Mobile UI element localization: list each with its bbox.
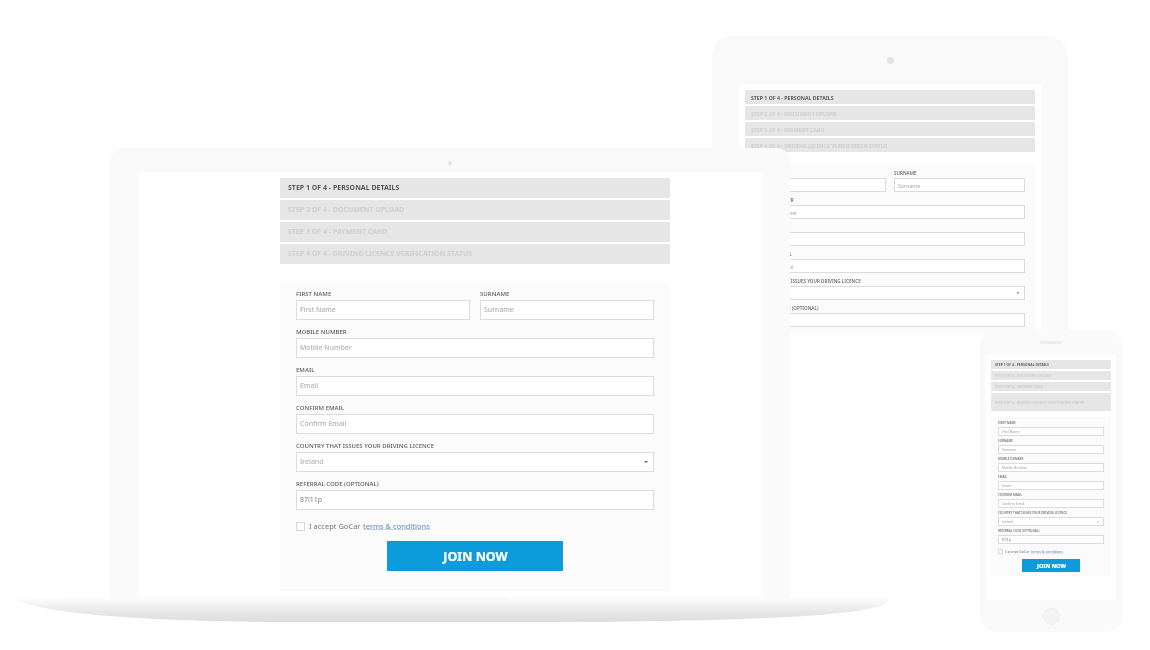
button[interactable]: Mobile Number	[296, 338, 654, 358]
staticText: Mobile Number	[300, 343, 352, 353]
staticText: STEP 2 OF 4 - DOCUMENT UPLOAD	[995, 373, 1052, 378]
button[interactable]: STEP 1 OF 4 - PERSONAL DETAILS	[991, 360, 1111, 369]
staticText: FIRST NAME	[296, 290, 332, 298]
button[interactable]: STEP 2 OF 4 - DOCUMENT UPLOAD	[280, 200, 670, 220]
button[interactable]: Mobile Number	[755, 205, 1025, 219]
staticText: 87i1p	[1002, 537, 1011, 542]
button[interactable]: STEP 1 OF 4 - PERSONAL DETAILS	[745, 90, 1035, 104]
staticText: CONFIRM EMAIL	[998, 493, 1023, 497]
button[interactable]: STEP 3 OF 4 - PAYMENT CARD	[745, 122, 1035, 136]
button[interactable]: STEP 4 OF 4 - DRIVING LICENCE VERIFICATI…	[991, 393, 1111, 411]
button[interactable]: Confirm Email	[755, 259, 1025, 273]
button[interactable]: Email	[998, 481, 1104, 490]
staticText: I accept GoCar	[309, 521, 363, 531]
button[interactable]: First Name	[296, 300, 470, 320]
button[interactable]: Ireland	[998, 517, 1104, 526]
staticText: Surname	[484, 305, 514, 315]
staticText: Email	[1002, 483, 1011, 488]
staticText: STEP 3 OF 4 - PAYMENT CARD	[751, 126, 825, 133]
staticText: MOBILE NUMBER	[755, 197, 794, 203]
staticText: Mobile Number	[759, 209, 798, 216]
button[interactable]: 87i1p	[998, 535, 1104, 544]
staticText: JOIN NOW	[1037, 562, 1066, 570]
staticText: First Name	[1002, 429, 1020, 434]
staticText: Mobile Number	[1002, 465, 1027, 470]
button[interactable]: JOIN NOW	[387, 541, 563, 571]
button[interactable]: I accept GoCar	[296, 521, 654, 531]
button[interactable]: Confirm Email	[998, 499, 1104, 508]
staticText: Surname	[1002, 447, 1017, 452]
staticText: STEP 4 OF 4 - DRIVING LICENCE VERIFICATI…	[751, 142, 888, 149]
staticText: JOIN NOW	[443, 548, 508, 565]
button[interactable]: Surname	[894, 178, 1025, 192]
button[interactable]: 87i11p	[755, 313, 1025, 327]
staticText: STEP 1 OF 4 - PERSONAL DETAILS	[288, 183, 400, 193]
staticText: First Name	[300, 305, 336, 315]
staticText: SURNAME	[894, 170, 917, 176]
button[interactable]: terms & conditions	[1031, 549, 1063, 554]
staticText: STEP 4 OF 4 - DRIVING LICENCE VERIFICATI…	[288, 249, 473, 259]
staticText: EMAIL	[296, 366, 315, 374]
staticText: STEP 3 OF 4 - PAYMENT CARD	[288, 227, 387, 237]
button[interactable]: First Name	[755, 178, 886, 192]
staticText: Confirm Email	[759, 263, 794, 270]
button[interactable]: STEP 3 OF 4 - PAYMENT CARD	[280, 222, 670, 242]
staticText: SURNAME	[998, 439, 1013, 443]
staticText: Ireland	[300, 457, 324, 467]
staticText: STEP 2 OF 4 - DOCUMENT UPLOAD	[288, 205, 405, 215]
staticText: COUNTRY THAT ISSUES YOUR DRIVING LICENCE	[998, 511, 1068, 515]
staticText: REFERRAL CODE (OPTIONAL)	[296, 480, 379, 488]
button[interactable]: Email	[296, 376, 654, 396]
staticText: Surname	[898, 182, 921, 189]
staticText: Confirm Email	[1002, 501, 1025, 506]
button[interactable]: Surname	[998, 445, 1104, 454]
staticText: 87i11p	[300, 495, 323, 505]
button[interactable]: Surname	[480, 300, 654, 320]
staticText: STEP 1 OF 4 - PERSONAL DETAILS	[995, 362, 1049, 367]
staticText: FIRST NAME	[998, 421, 1016, 425]
button[interactable]: STEP 2 OF 4 - DOCUMENT UPLOAD	[991, 371, 1111, 380]
staticText: MOBILE NUMBER	[296, 328, 347, 336]
staticText: CONFIRM EMAIL	[296, 404, 345, 412]
staticText: STEP 2 OF 4 - DOCUMENT UPLOAD	[751, 110, 838, 117]
button[interactable]: I accept GoCar	[998, 549, 1104, 554]
button[interactable]: Email	[755, 232, 1025, 246]
button[interactable]: STEP 3 OF 4 - PAYMENT CARD	[991, 382, 1111, 391]
button[interactable]: Mobile Number	[998, 463, 1104, 472]
staticText: Email	[300, 381, 318, 391]
button[interactable]: STEP 2 OF 4 - DOCUMENT UPLOAD	[745, 106, 1035, 120]
button[interactable]: STEP 4 OF 4 - DRIVING LICENCE VERIFICATI…	[280, 244, 670, 264]
staticText: REFERRAL CODE (OPTIONAL)	[755, 305, 819, 311]
button[interactable]: First Name	[998, 427, 1104, 436]
button[interactable]: STEP 4 OF 4 - DRIVING LICENCE VERIFICATI…	[745, 138, 1035, 152]
staticText: Confirm Email	[300, 419, 347, 429]
staticText: STEP 3 OF 4 - PAYMENT CARD	[995, 384, 1043, 389]
staticText: SURNAME	[480, 290, 510, 298]
staticText: MOBILE NUMBER	[998, 457, 1024, 461]
button[interactable]: STEP 1 OF 4 - PERSONAL DETAILS	[280, 178, 670, 198]
staticText: CONFIRM EMAIL	[755, 251, 792, 257]
staticText: STEP 1 OF 4 - PERSONAL DETAILS	[751, 94, 834, 101]
staticText: Ireland	[1002, 519, 1014, 524]
button[interactable]: JOIN NOW	[1022, 559, 1080, 572]
button[interactable]: Confirm Email	[296, 414, 654, 434]
button[interactable]: terms & conditions	[363, 521, 430, 531]
button[interactable]: Ireland	[755, 286, 1025, 300]
staticText: COUNTRY THAT ISSUES YOUR DRIVING LICENCE	[755, 278, 861, 284]
staticText: STEP 4 OF 4 - DRIVING LICENCE VERIFICATI…	[995, 400, 1085, 405]
button[interactable]: Ireland	[296, 452, 654, 472]
staticText: EMAIL	[998, 475, 1008, 479]
staticText: I accept GoCar	[1005, 549, 1031, 554]
staticText: COUNTRY THAT ISSUES YOUR DRIVING LICENCE	[296, 442, 435, 450]
staticText: REFERRAL CODE (OPTIONAL)	[998, 529, 1040, 533]
button[interactable]: 87i11p	[296, 490, 654, 510]
